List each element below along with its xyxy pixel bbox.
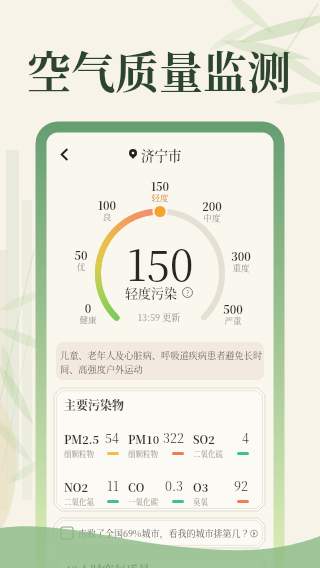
button[interactable]: 击败了全国69%城市，看我的城市排第几？: [61, 518, 258, 548]
staticText: 良: [87, 210, 127, 222]
button[interactable]: Back: [52, 142, 76, 166]
staticText: 细颗粒物: [128, 448, 158, 459]
staticText: 重度: [221, 261, 261, 273]
staticText: 济宁市: [141, 145, 182, 164]
staticText: 200: [192, 198, 232, 214]
staticText: 48小时空气质量: [64, 561, 151, 568]
staticText: 击败了全国69%城市，看我的城市排第几？: [78, 527, 250, 540]
button[interactable]: 轻度污染: [125, 283, 193, 302]
staticText: 4: [242, 429, 249, 447]
staticText: 150: [140, 178, 180, 194]
staticText: 92: [234, 477, 249, 495]
button[interactable]: 儿童、老年人及心脏病、呼吸道疾病患者避免长时 间、高强度户外运动: [56, 342, 264, 380]
staticText: 100: [87, 197, 127, 213]
staticText: 空气质量监测: [27, 38, 291, 101]
staticText: 54: [105, 429, 119, 447]
staticText: 轻度: [140, 191, 180, 203]
staticText: 二氧化氮: [64, 496, 94, 507]
staticText: NO2: [64, 479, 88, 495]
staticText: 13:59 更新: [114, 311, 204, 324]
staticText: 500: [213, 301, 253, 317]
staticText: CO: [128, 479, 145, 495]
staticText: 臭氧: [193, 496, 208, 507]
staticText: 健康: [68, 313, 108, 325]
staticText: SO2: [193, 431, 215, 447]
staticText: 严重: [213, 314, 253, 326]
staticText: 细颗粒物: [64, 448, 94, 459]
staticText: 300: [221, 248, 261, 264]
staticText: 儿童、老年人及心脏病、呼吸道疾病患者避免长时 间、高强度户外运动: [60, 348, 263, 375]
staticText: 150: [100, 233, 220, 293]
staticText: 二氧化硫: [193, 448, 223, 459]
staticText: 主要污染物: [64, 396, 125, 413]
staticText: O3: [193, 479, 209, 495]
staticText: 优: [61, 260, 101, 272]
staticText: 0: [68, 300, 108, 316]
other: Info: [182, 287, 193, 298]
staticText: 50: [61, 247, 101, 263]
staticText: ?: [186, 287, 190, 298]
staticText: PM2.5: [64, 431, 100, 447]
staticText: PM10: [128, 431, 160, 447]
staticText: 11: [107, 477, 119, 495]
staticText: 一氧化碳: [128, 496, 158, 507]
staticText: 轻度污染: [125, 283, 178, 302]
staticText: 中度: [192, 211, 232, 223]
staticText: 0.3: [165, 477, 184, 495]
staticText: 322: [163, 429, 184, 447]
button[interactable]: 济宁市: [128, 144, 182, 164]
